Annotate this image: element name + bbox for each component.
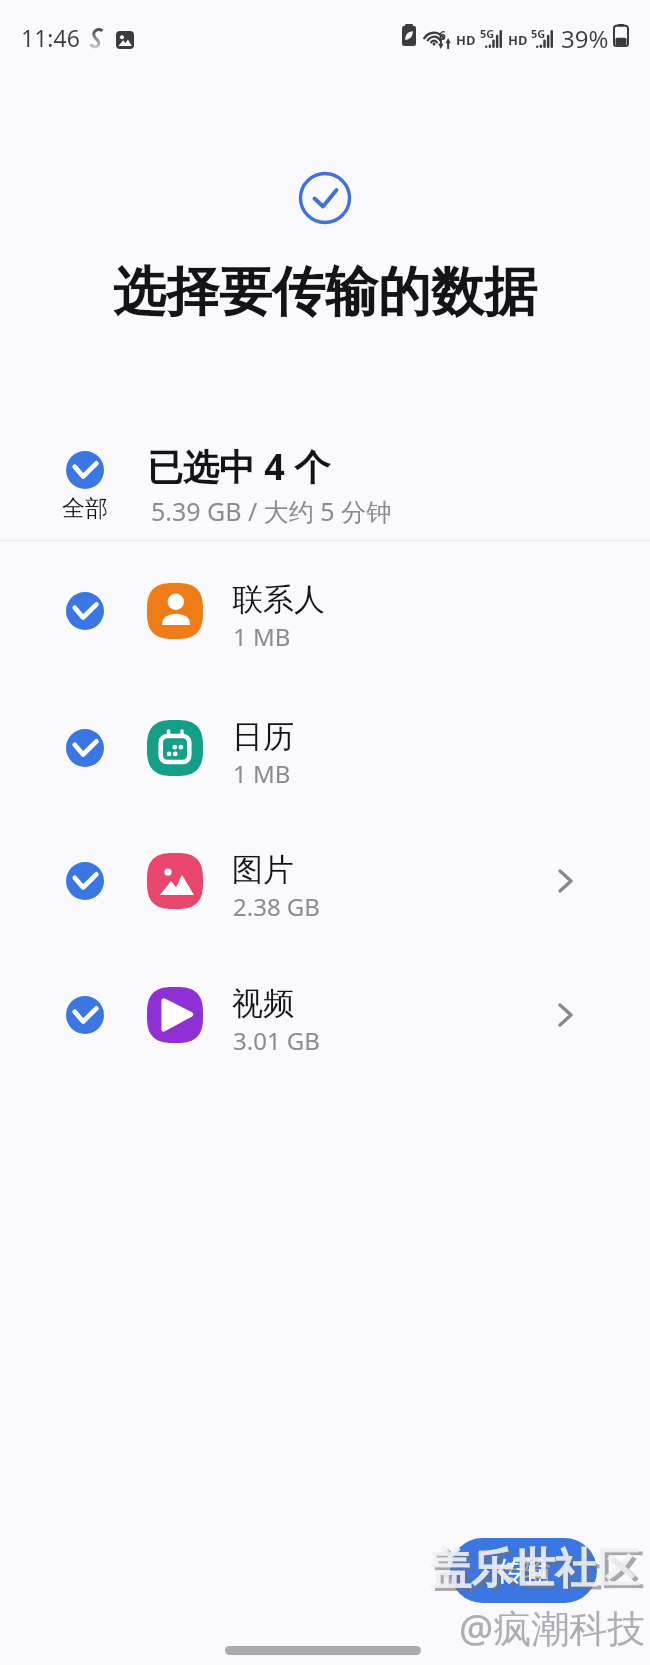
staticText: HD	[508, 31, 528, 49]
button[interactable]: Open 视频 details	[540, 991, 588, 1039]
staticText: 3.01 GB	[233, 1024, 320, 1057]
button[interactable]: 全部 selected	[0, 420, 650, 540]
button[interactable]: Open 图片 details	[540, 857, 588, 905]
staticText: HD	[456, 31, 476, 49]
staticText: 传输	[497, 1554, 551, 1588]
staticText: 1 MB	[233, 757, 291, 790]
staticText: 1 MB	[233, 620, 291, 653]
staticText: 盖乐世社区	[429, 1543, 639, 1596]
other: Selection complete	[299, 172, 351, 224]
staticText: 视频	[232, 984, 294, 1023]
button[interactable]: 视频 selected	[0, 948, 650, 1082]
staticText: 11:46	[21, 22, 80, 53]
staticText: 5G	[480, 26, 495, 41]
staticText: 39%	[561, 22, 609, 55]
staticText: 联系人	[232, 580, 325, 619]
button[interactable]: 日历 selected	[0, 681, 650, 815]
staticText: @疯潮科技	[459, 1601, 646, 1653]
staticText: 6	[439, 27, 446, 43]
staticText: 盖乐世社区	[433, 1546, 643, 1599]
staticText: 5G	[531, 26, 546, 41]
button[interactable]: 联系人 selected	[42, 568, 128, 654]
staticText: 选择要传输的数据	[0, 259, 650, 326]
staticText: 图片	[232, 850, 294, 889]
staticText: 日历	[232, 717, 294, 756]
staticText: 已选中 4 个	[147, 442, 331, 491]
button[interactable]: 图片 selected	[42, 838, 128, 924]
staticText: 全部	[62, 494, 108, 523]
button[interactable]: 日历 selected	[42, 705, 128, 791]
button[interactable]: 全部 selected	[52, 438, 118, 522]
button[interactable]: 传输	[450, 1538, 597, 1603]
button[interactable]: 图片 selected	[0, 814, 650, 948]
staticText: 5.39 GB / 大约 5 分钟	[151, 494, 392, 528]
button[interactable]: 视频 selected	[42, 972, 128, 1058]
button[interactable]: 联系人 selected	[0, 544, 650, 678]
staticText: 2.38 GB	[233, 890, 320, 923]
